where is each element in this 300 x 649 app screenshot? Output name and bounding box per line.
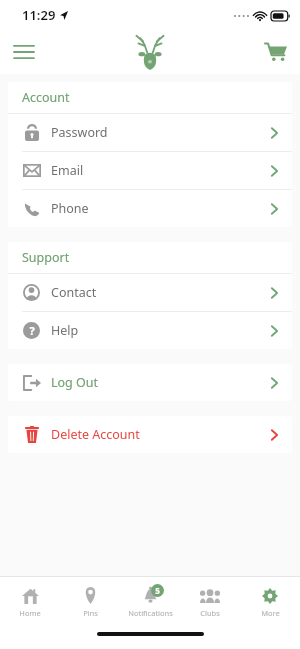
- staticText: Delete Account: [51, 426, 140, 443]
- button[interactable]: Clubs: [180, 577, 240, 625]
- staticText: Home: [19, 608, 41, 618]
- button[interactable]: Contact: [8, 274, 292, 311]
- staticText: ?: [29, 323, 35, 338]
- staticText: Log Out: [51, 374, 99, 391]
- staticText: 5: [155, 585, 160, 596]
- staticText: Notifications: [128, 608, 173, 618]
- button[interactable]: ?: [8, 312, 292, 349]
- button[interactable]: Delete Account: [8, 416, 292, 453]
- staticText: Contact: [51, 284, 97, 301]
- staticText: Clubs: [200, 608, 220, 618]
- staticText: Help: [51, 322, 79, 339]
- staticText: Account: [22, 89, 70, 106]
- button[interactable]: Phone: [8, 190, 292, 227]
- staticText: Pins: [83, 608, 98, 618]
- button[interactable]: Cart: [258, 34, 294, 70]
- button[interactable]: Email: [8, 152, 292, 189]
- button[interactable]: More: [240, 577, 300, 625]
- staticText: Email: [51, 162, 84, 179]
- staticText: More: [261, 608, 280, 618]
- staticText: Phone: [51, 200, 89, 217]
- button[interactable]: Log Out: [8, 364, 292, 401]
- button[interactable]: Pins: [60, 577, 120, 625]
- staticText: Password: [51, 124, 108, 141]
- staticText: 11:29: [22, 6, 56, 24]
- staticText: Support: [22, 249, 70, 266]
- button[interactable]: Password: [8, 114, 292, 151]
- button[interactable]: 5: [120, 577, 180, 625]
- button[interactable]: Menu: [6, 34, 42, 70]
- button[interactable]: Home: [0, 577, 60, 625]
